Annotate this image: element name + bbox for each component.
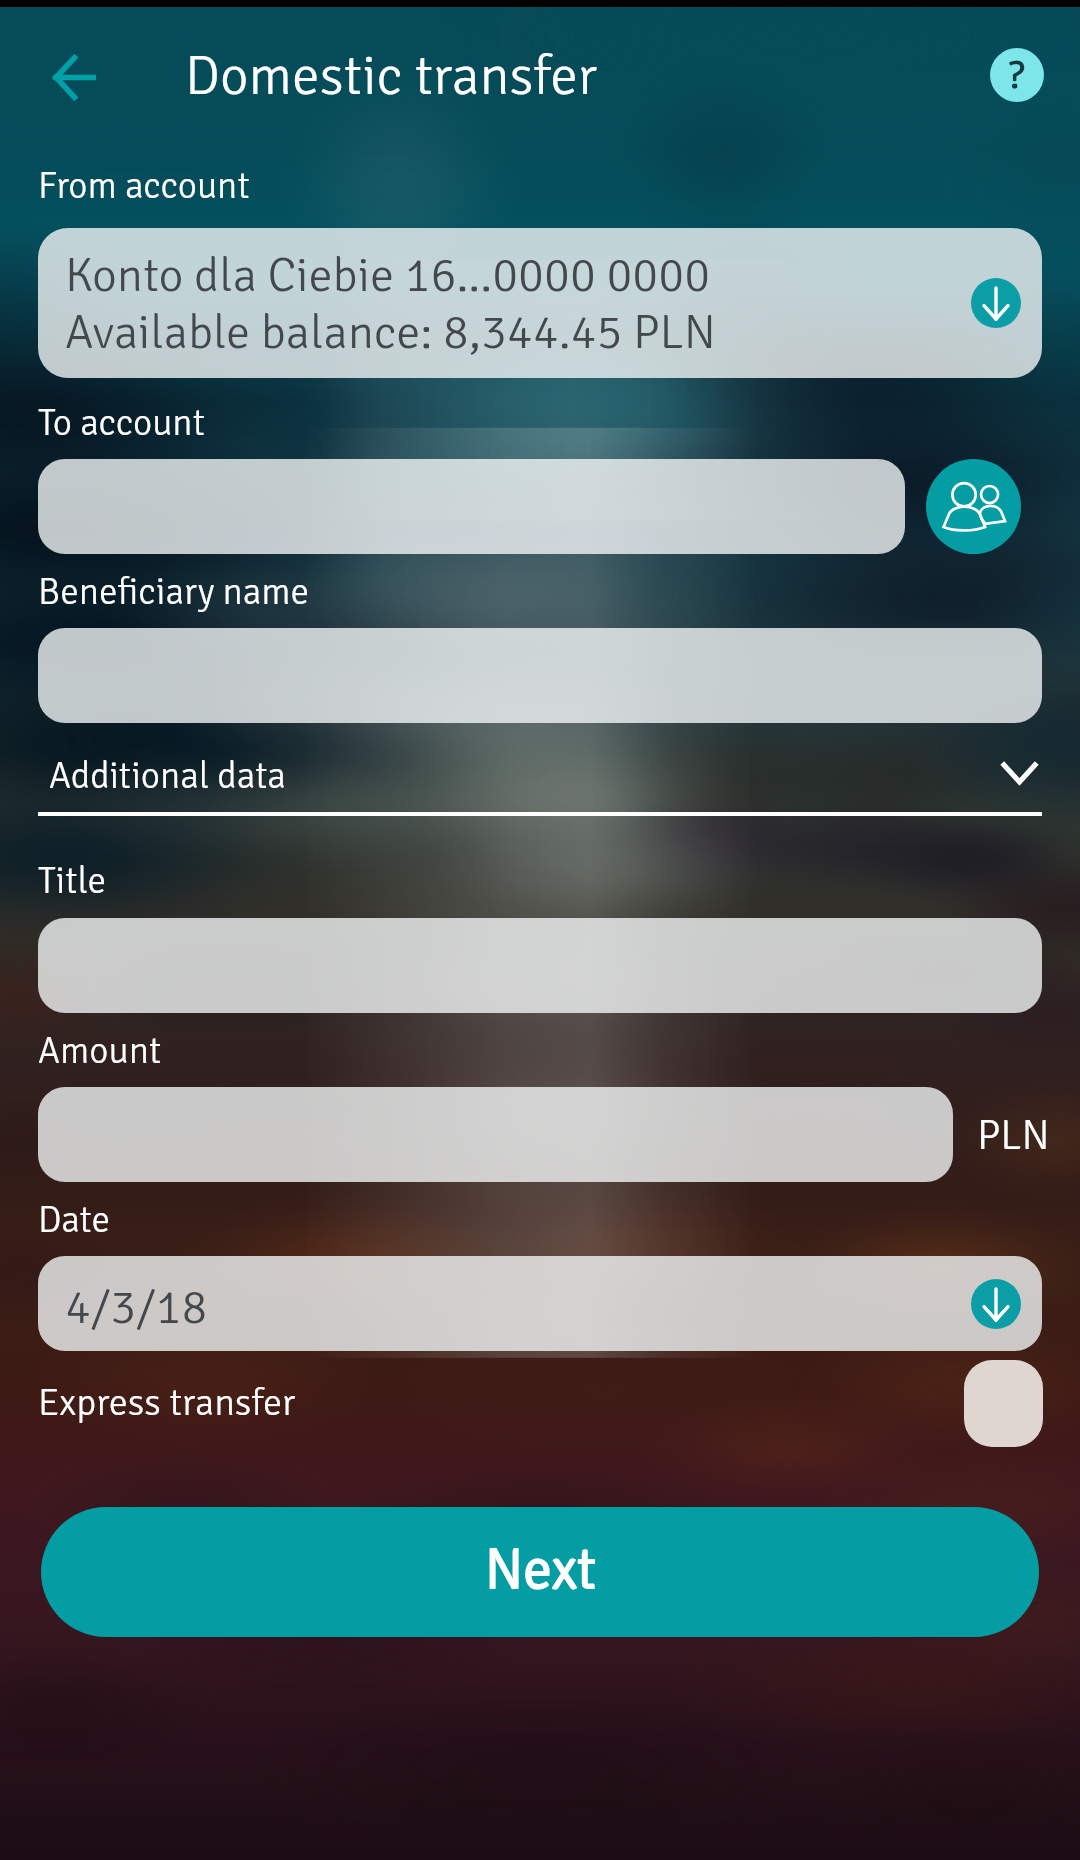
staticText: Title xyxy=(38,858,107,904)
button[interactable]: 4/3/18 xyxy=(38,1256,1042,1351)
staticText: Konto dla Ciebie 16...0000 0000 xyxy=(65,246,711,305)
button[interactable]: Next xyxy=(41,1507,1039,1637)
staticText: Express transfer xyxy=(38,1379,296,1426)
staticText: Domestic transfer xyxy=(185,42,598,110)
button[interactable]: Choose beneficiary xyxy=(926,459,1021,554)
staticText: Additional data xyxy=(49,753,286,799)
staticText: Next xyxy=(485,1534,596,1604)
button[interactable] xyxy=(38,628,1042,723)
button[interactable]: Konto dla Ciebie 16...0000 0000 xyxy=(38,228,1042,378)
staticText: Amount xyxy=(38,1028,162,1074)
button[interactable]: Express transfer xyxy=(964,1360,1043,1447)
staticText: PLN xyxy=(977,1110,1050,1162)
button[interactable]: Back xyxy=(28,31,120,123)
button[interactable]: Help xyxy=(972,30,1062,120)
button[interactable] xyxy=(38,1087,953,1182)
button[interactable] xyxy=(38,459,905,554)
button[interactable]: Additional data xyxy=(38,748,1042,816)
staticText: 4/3/18 xyxy=(65,1278,208,1337)
staticText: ? xyxy=(1009,50,1025,99)
button[interactable] xyxy=(38,918,1042,1013)
staticText: To account xyxy=(38,400,205,446)
staticText: Available balance: 8,344.45 PLN xyxy=(65,303,716,362)
staticText: From account xyxy=(38,163,250,209)
staticText: Date xyxy=(38,1197,111,1243)
staticText: Beneficiary name xyxy=(38,569,310,615)
